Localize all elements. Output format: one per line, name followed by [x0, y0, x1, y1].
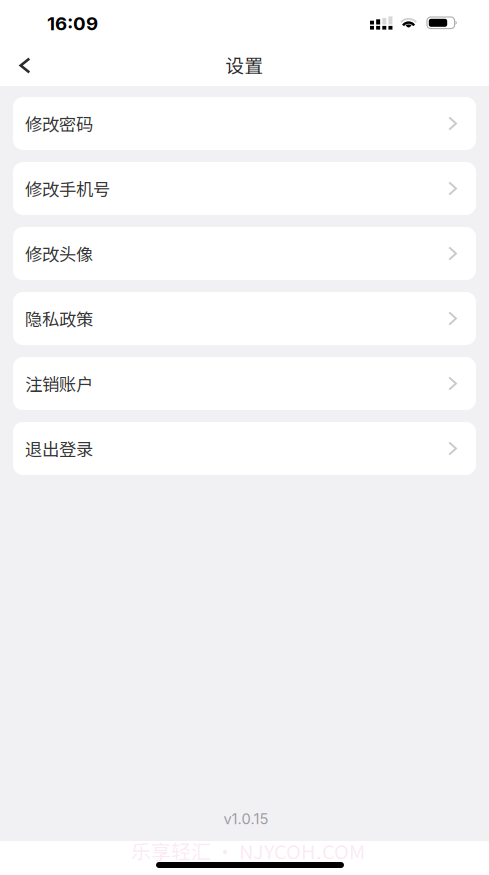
staticText: 注销账户	[25, 371, 93, 396]
staticText: 退出登录	[25, 436, 93, 461]
staticText: 修改手机号	[25, 176, 110, 201]
button[interactable]: 隐私政策	[13, 292, 476, 345]
staticText: 修改头像	[25, 241, 93, 266]
button[interactable]: 退出登录	[13, 422, 476, 475]
staticText: 修改密码	[25, 111, 93, 136]
button[interactable]: 修改手机号	[13, 162, 476, 215]
staticText: 16:09	[47, 12, 98, 35]
staticText: 乐享轻汇 · NJYCOH.COM	[131, 836, 365, 865]
button[interactable]: 修改头像	[13, 227, 476, 280]
button[interactable]: 修改密码	[13, 97, 476, 150]
staticText: 设置	[225, 51, 263, 78]
button[interactable]: Back	[0, 0, 47, 85]
staticText: 隐私政策	[25, 306, 93, 331]
button[interactable]: 注销账户	[13, 357, 476, 410]
staticText: v1.0.15	[223, 810, 268, 828]
